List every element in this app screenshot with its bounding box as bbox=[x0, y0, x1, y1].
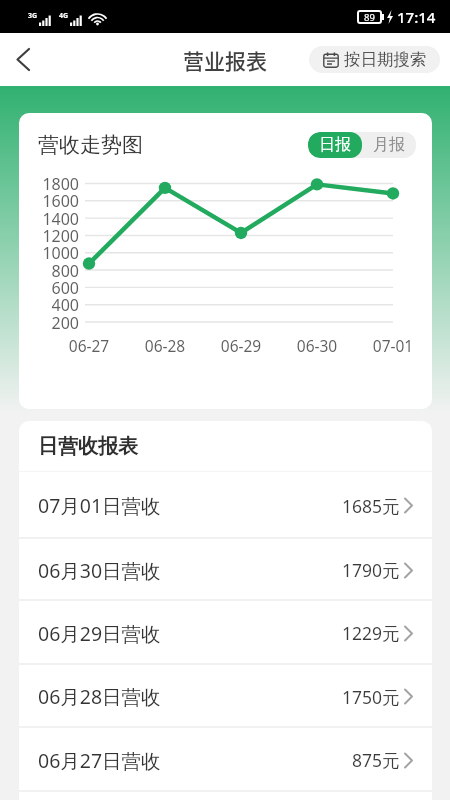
button[interactable]: 日报 bbox=[308, 132, 362, 158]
staticText: 600 bbox=[31, 277, 79, 299]
staticText: 400 bbox=[31, 294, 79, 316]
staticText: 3G bbox=[28, 11, 38, 21]
staticText: 06月27日营收 bbox=[38, 747, 161, 774]
staticText: 1400 bbox=[31, 208, 79, 230]
staticText: 800 bbox=[31, 260, 79, 282]
staticText: 06月29日营收 bbox=[38, 620, 161, 647]
staticText: 1600 bbox=[31, 190, 79, 212]
staticText: 06-28 bbox=[139, 335, 191, 356]
staticText: 营收走势图 bbox=[38, 132, 143, 158]
button[interactable]: 06月29日营收 bbox=[19, 601, 432, 665]
button[interactable] bbox=[0, 33, 46, 86]
staticText: 1685元 bbox=[342, 494, 400, 518]
button[interactable]: 07月01日营收 bbox=[19, 472, 432, 539]
staticText: 07-01 bbox=[367, 335, 419, 356]
staticText: 06月28日营收 bbox=[38, 683, 161, 710]
staticText: 200 bbox=[31, 312, 79, 334]
staticText: 日报 bbox=[319, 135, 351, 155]
staticText: 1000 bbox=[31, 242, 79, 264]
button[interactable]: 按日期搜索 bbox=[309, 46, 440, 73]
staticText: 月报 bbox=[373, 135, 405, 155]
staticText: 06-30 bbox=[291, 335, 343, 356]
staticText: 89 bbox=[364, 11, 375, 24]
staticText: 1750元 bbox=[342, 685, 400, 709]
staticText: 06-29 bbox=[215, 335, 267, 356]
staticText: 4G bbox=[59, 11, 69, 21]
staticText: 07月01日营收 bbox=[38, 492, 161, 519]
button[interactable]: 月报 bbox=[362, 132, 416, 158]
staticText: 1800 bbox=[31, 173, 79, 195]
staticText: 1229元 bbox=[342, 621, 400, 645]
staticText: 按日期搜索 bbox=[344, 49, 427, 70]
button[interactable]: 06月27日营收 bbox=[19, 728, 432, 792]
staticText: 日营收报表 bbox=[38, 434, 138, 459]
staticText: 17:14 bbox=[397, 7, 436, 27]
staticText: 875元 bbox=[352, 748, 400, 772]
staticText: 营业报表 bbox=[183, 45, 267, 75]
staticText: 1790元 bbox=[342, 558, 400, 582]
button[interactable]: 06月28日营收 bbox=[19, 665, 432, 728]
staticText: 06月30日营收 bbox=[38, 557, 161, 584]
button[interactable]: 06月30日营收 bbox=[19, 539, 432, 601]
staticText: 1200 bbox=[31, 225, 79, 247]
staticText: 06-27 bbox=[63, 335, 115, 356]
